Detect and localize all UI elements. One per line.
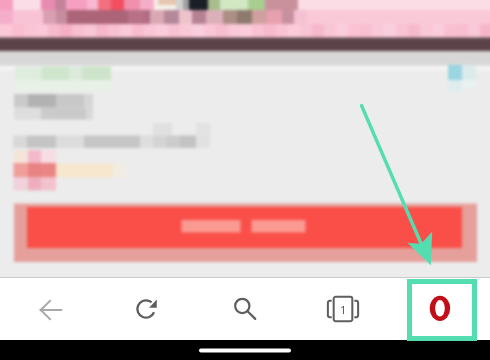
button[interactable]: Tabs (314, 286, 372, 332)
button[interactable]: Search (213, 286, 271, 332)
button[interactable]: Back (21, 287, 81, 333)
button[interactable]: Reload (117, 286, 175, 332)
staticText: 1 (340, 302, 347, 317)
button[interactable]: Opera menu (407, 279, 477, 341)
